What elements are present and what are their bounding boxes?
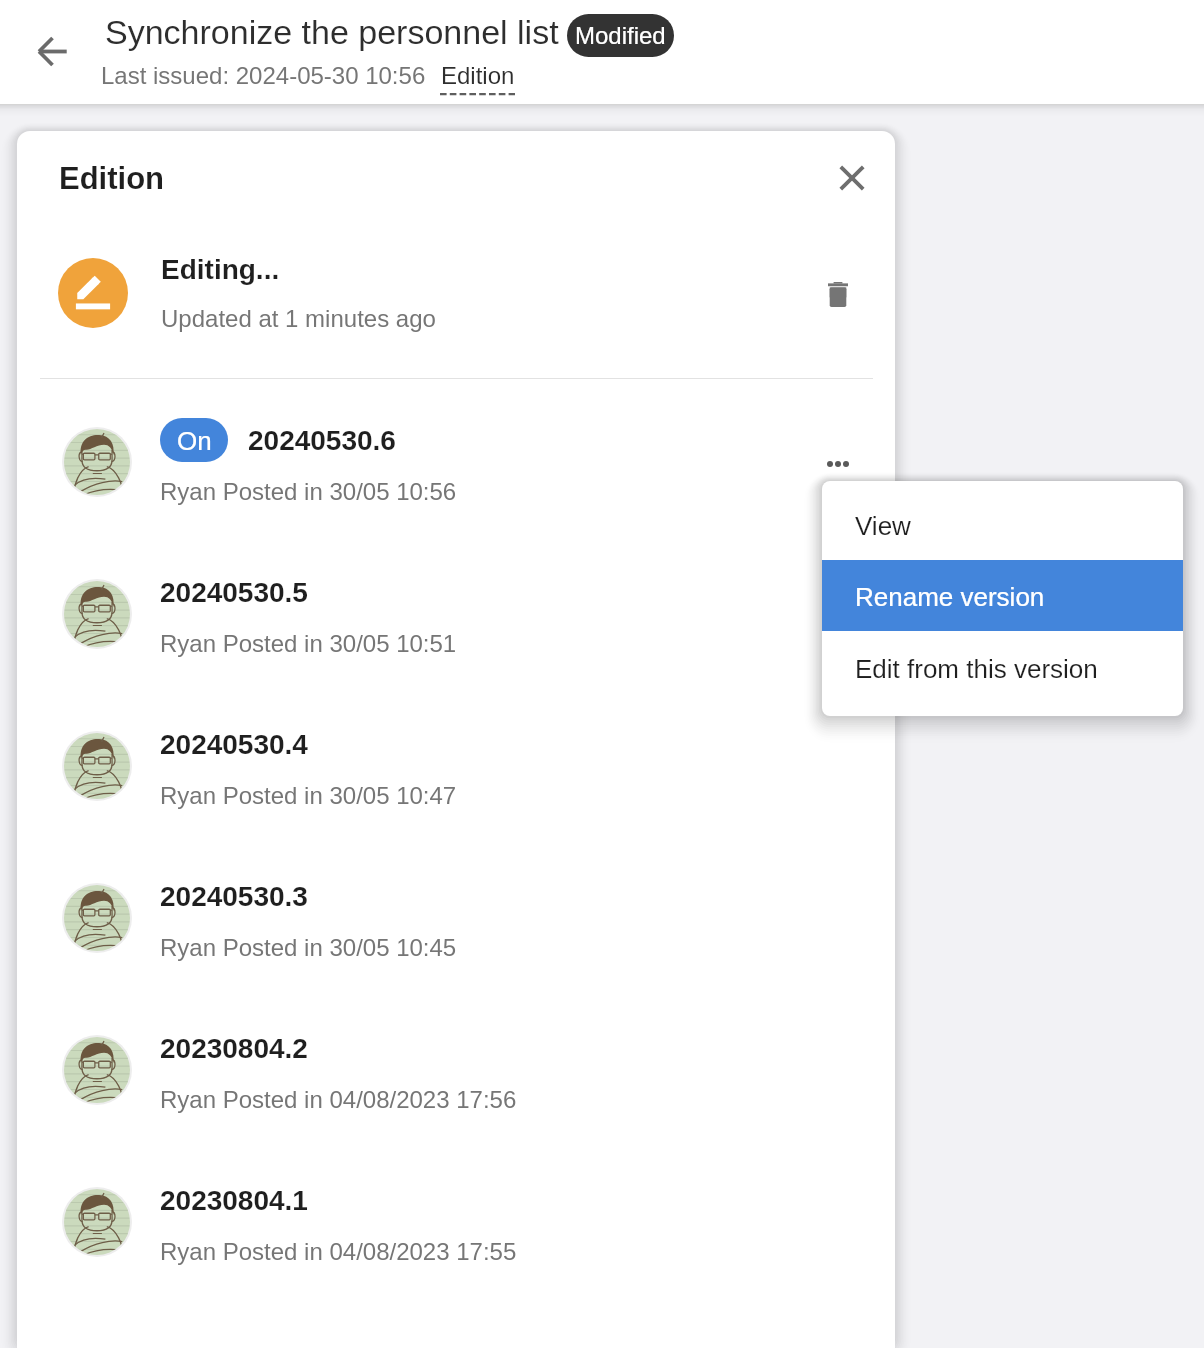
button[interactable]: View	[822, 481, 1183, 560]
button[interactable]: Delete	[808, 264, 868, 324]
staticText: Rename version	[855, 582, 1045, 611]
button[interactable]: 20240530.4	[40, 708, 873, 860]
staticText: 20230804.2	[160, 1033, 308, 1064]
staticText: Ryan Posted in 30/05 10:51	[160, 630, 457, 657]
button[interactable]: Close	[820, 146, 884, 210]
button[interactable]: 20240530.3	[40, 860, 873, 1012]
button[interactable]: 20230804.1	[40, 1164, 873, 1316]
staticText: View	[855, 511, 911, 540]
staticText: Edit from this version	[855, 654, 1098, 683]
staticText: 20240530.4	[160, 729, 308, 760]
button[interactable]: Rename version	[822, 560, 1183, 631]
button[interactable]: Edit from this version	[822, 631, 1183, 716]
staticText: Edition	[59, 161, 165, 196]
staticText: Ryan Posted in 30/05 10:45	[160, 934, 457, 961]
staticText: Ryan Posted in 30/05 10:56	[160, 478, 457, 505]
staticText: Synchronize the personnel list	[105, 13, 559, 51]
staticText: 20240530.3	[160, 881, 308, 912]
staticText: Ryan Posted in 04/08/2023 17:56	[160, 1086, 517, 1113]
button[interactable]: On	[40, 404, 873, 556]
button[interactable]: Back	[18, 17, 86, 85]
staticText: Editing...	[161, 254, 280, 285]
button[interactable]: More options	[808, 434, 868, 494]
staticText: Last issued: 2024-05-30 10:56	[101, 62, 426, 89]
staticText: 20240530.6	[248, 425, 396, 456]
staticText: Ryan Posted in 04/08/2023 17:55	[160, 1238, 517, 1265]
staticText: 20240530.5	[160, 577, 308, 608]
staticText: Ryan Posted in 30/05 10:47	[160, 782, 457, 809]
button[interactable]: 20230804.2	[40, 1012, 873, 1164]
staticText: Edition	[441, 62, 515, 89]
button[interactable]: 20240530.5	[40, 556, 873, 708]
staticText: 20230804.1	[160, 1185, 308, 1216]
staticText: Updated at 1 minutes ago	[161, 305, 436, 332]
staticText: Modified	[575, 22, 666, 49]
staticText: On	[177, 426, 212, 455]
